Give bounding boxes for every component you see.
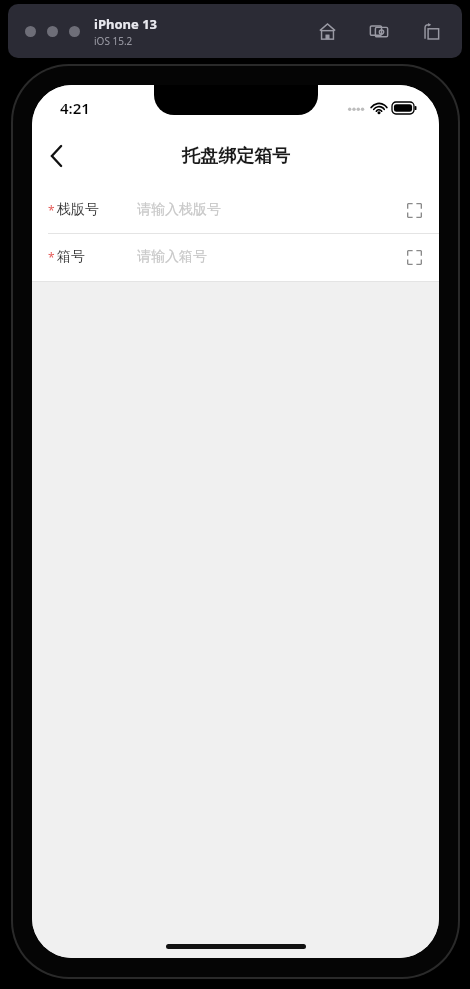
button[interactable] [69,26,80,37]
staticText: 托盘绑定箱号 [182,145,290,168]
button[interactable]: * [32,234,439,280]
staticText: 箱号 [57,248,85,266]
staticText: iPhone 13 [94,15,157,33]
button[interactable]: Back [32,132,80,180]
staticText: iOS 15.2 [94,34,133,48]
button[interactable]: * [32,187,439,233]
button[interactable] [25,26,36,37]
button[interactable]: Rotate [418,18,444,44]
button[interactable]: Screenshot [366,18,392,44]
button[interactable] [47,26,58,37]
staticText: * [48,202,55,218]
staticText: 栈版号 [57,201,99,219]
staticText: 请输入箱号 [137,248,207,266]
button[interactable]: Scan [397,193,431,227]
staticText: 4:21 [60,98,90,118]
staticText: * [48,249,55,265]
button[interactable]: Home [314,18,340,44]
staticText: 请输入栈版号 [137,201,221,219]
button[interactable]: Scan [397,240,431,274]
